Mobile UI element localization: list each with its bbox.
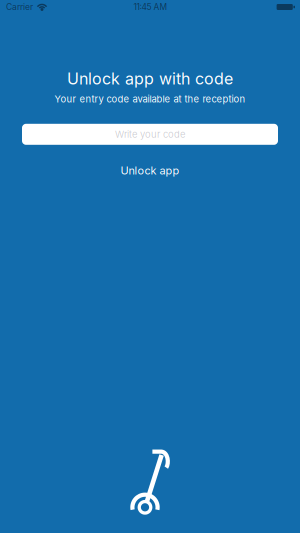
staticText: Carrier <box>6 2 33 12</box>
staticText: Write your code <box>115 129 185 140</box>
staticText: 11:45 AM <box>133 2 167 12</box>
button[interactable]: Write your code <box>0 124 300 145</box>
staticText: Unlock app <box>120 164 179 177</box>
staticText: Your entry code available at the recepti… <box>54 93 245 105</box>
button[interactable]: Unlock app <box>106 160 193 181</box>
staticText: Unlock app with code <box>67 69 233 88</box>
